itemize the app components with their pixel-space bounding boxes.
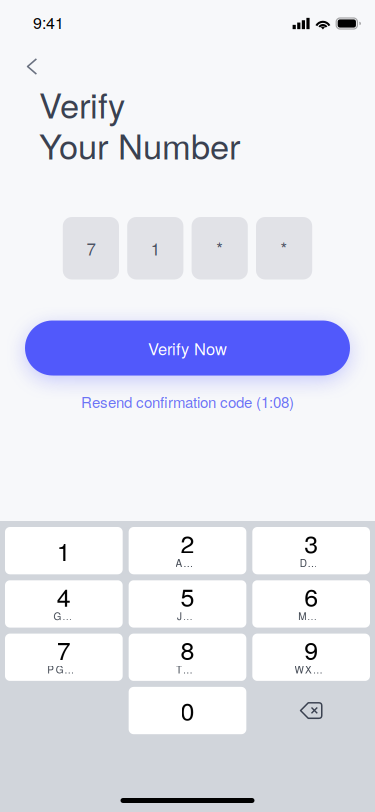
staticText: DEF bbox=[300, 555, 323, 570]
staticText: PGRS bbox=[47, 662, 80, 676]
button[interactable]: Back bbox=[10, 44, 54, 83]
button[interactable]: 6 bbox=[252, 580, 370, 628]
staticText: Verify bbox=[39, 79, 125, 128]
staticText: 9 bbox=[304, 631, 318, 667]
staticText: 1 bbox=[57, 532, 71, 568]
staticText: * bbox=[216, 236, 223, 260]
staticText: GHI bbox=[53, 609, 74, 623]
staticText: 0 bbox=[180, 692, 194, 728]
staticText: 1 bbox=[151, 236, 160, 260]
staticText: MNO bbox=[298, 609, 324, 623]
staticText: Verify Now bbox=[148, 336, 227, 360]
staticText: 8 bbox=[180, 631, 194, 667]
button[interactable]: Resend confirmation code (1:08) bbox=[81, 390, 294, 412]
button[interactable]: 0 bbox=[129, 687, 246, 734]
button[interactable]: 5 bbox=[129, 580, 246, 628]
button[interactable]: 3 bbox=[252, 527, 370, 574]
staticText: WXYZ bbox=[295, 662, 328, 676]
staticText: 9:41 bbox=[33, 10, 64, 33]
button[interactable]: 4 bbox=[5, 580, 123, 628]
button[interactable]: Delete bbox=[252, 687, 370, 734]
staticText: 7 bbox=[86, 236, 95, 260]
button[interactable]: 1 bbox=[5, 527, 123, 574]
staticText: JKL bbox=[177, 609, 198, 623]
staticText: * bbox=[281, 236, 288, 260]
button[interactable]: 8 bbox=[129, 634, 246, 681]
staticText: 6 bbox=[304, 578, 318, 614]
button[interactable]: 7 bbox=[5, 634, 123, 681]
staticText: 7 bbox=[57, 631, 71, 667]
staticText: 3 bbox=[304, 525, 318, 561]
staticText: ABC bbox=[176, 555, 199, 570]
staticText: 5 bbox=[180, 578, 194, 614]
staticText: 4 bbox=[57, 578, 71, 614]
button[interactable]: Verify Now bbox=[25, 320, 350, 375]
staticText: Resend confirmation code (1:08) bbox=[81, 391, 294, 412]
button[interactable]: 2 bbox=[129, 527, 246, 574]
staticText: Your Number bbox=[39, 120, 240, 169]
button[interactable]: 9 bbox=[252, 634, 370, 681]
staticText: 2 bbox=[180, 525, 194, 561]
staticText: TUV bbox=[176, 662, 199, 676]
